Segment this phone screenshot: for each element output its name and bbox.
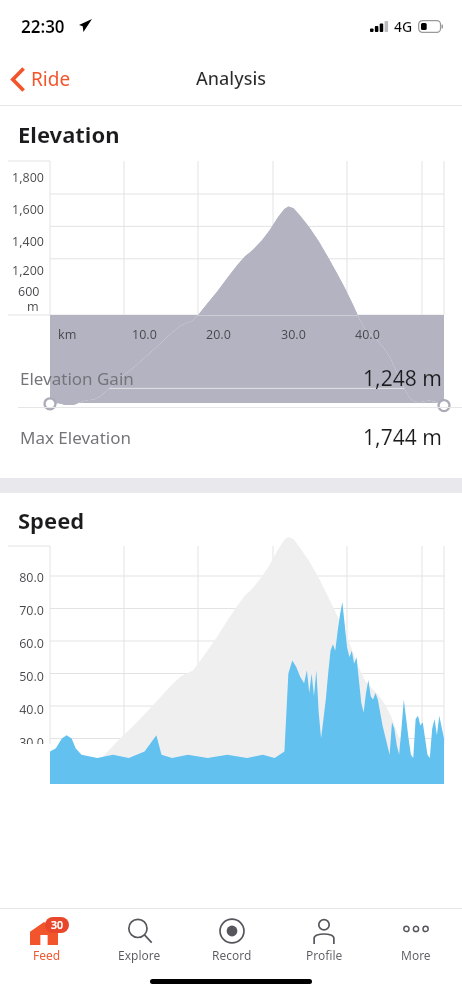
button[interactable]: Record <box>186 909 278 971</box>
other: Profile <box>311 918 337 944</box>
staticText: 40.0 <box>19 701 44 718</box>
button[interactable]: 30 <box>0 909 93 971</box>
staticText: Speed <box>18 505 85 535</box>
staticText: 30.0 <box>281 326 306 343</box>
button[interactable]: Max Elevation <box>0 408 462 466</box>
other: Explore <box>127 918 153 944</box>
staticText: 4G <box>394 17 413 36</box>
staticText: Elevation Gain <box>20 367 134 390</box>
staticText: Record <box>212 947 252 963</box>
button[interactable]: Ride <box>0 58 85 100</box>
staticText: 1,248 m <box>363 364 442 393</box>
staticText: Feed <box>33 947 61 963</box>
button[interactable]: Explore <box>93 909 186 971</box>
staticText: 40.0 <box>355 326 380 343</box>
staticText: 1,200 <box>12 262 44 279</box>
button[interactable]: Elevation Gain <box>0 349 462 407</box>
staticText: Max Elevation <box>20 426 131 449</box>
staticText: m <box>27 298 39 315</box>
staticText: km <box>58 326 77 343</box>
staticText: Profile <box>306 947 343 963</box>
button[interactable]: More <box>370 909 462 971</box>
staticText: 60.0 <box>19 635 44 652</box>
staticText: 20.0 <box>206 326 231 343</box>
staticText: 22:30 <box>21 15 65 38</box>
staticText: 1,744 m <box>363 423 442 452</box>
staticText: 1,400 <box>12 233 44 250</box>
staticText: More <box>401 947 431 963</box>
staticText: 70.0 <box>19 602 44 619</box>
button[interactable]: Profile <box>278 909 370 971</box>
staticText: 50.0 <box>19 668 44 685</box>
staticText: Analysis <box>196 66 267 91</box>
staticText: 600 <box>18 283 40 300</box>
other: More <box>401 918 431 944</box>
staticText: 1,600 <box>12 201 44 218</box>
staticText: Elevation <box>18 119 120 149</box>
other: Record <box>219 918 245 944</box>
staticText: Explore <box>118 947 161 963</box>
staticText: 1,800 <box>12 169 44 186</box>
staticText: 80.0 <box>19 569 44 586</box>
staticText: Ride <box>31 66 71 92</box>
staticText: 30.0 <box>19 734 44 744</box>
staticText: 10.0 <box>132 326 157 343</box>
staticText: 30 <box>51 918 64 932</box>
